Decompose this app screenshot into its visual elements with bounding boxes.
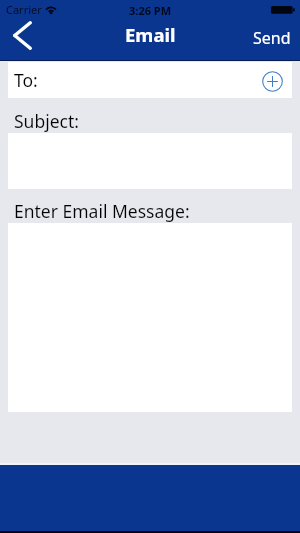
staticText: Enter Email Message: — [14, 199, 190, 223]
staticText: Email — [125, 22, 176, 47]
button[interactable]: Add recipient — [260, 69, 284, 93]
staticText: 3:26 PM — [129, 3, 172, 18]
staticText: Carrier — [6, 2, 42, 17]
staticText: To: — [14, 68, 38, 92]
button[interactable]: Back — [2, 20, 42, 61]
staticText: Subject: — [14, 109, 79, 133]
staticText: Send — [253, 27, 291, 49]
button[interactable]: Send — [243, 20, 300, 61]
button[interactable]: To: — [8, 62, 292, 98]
